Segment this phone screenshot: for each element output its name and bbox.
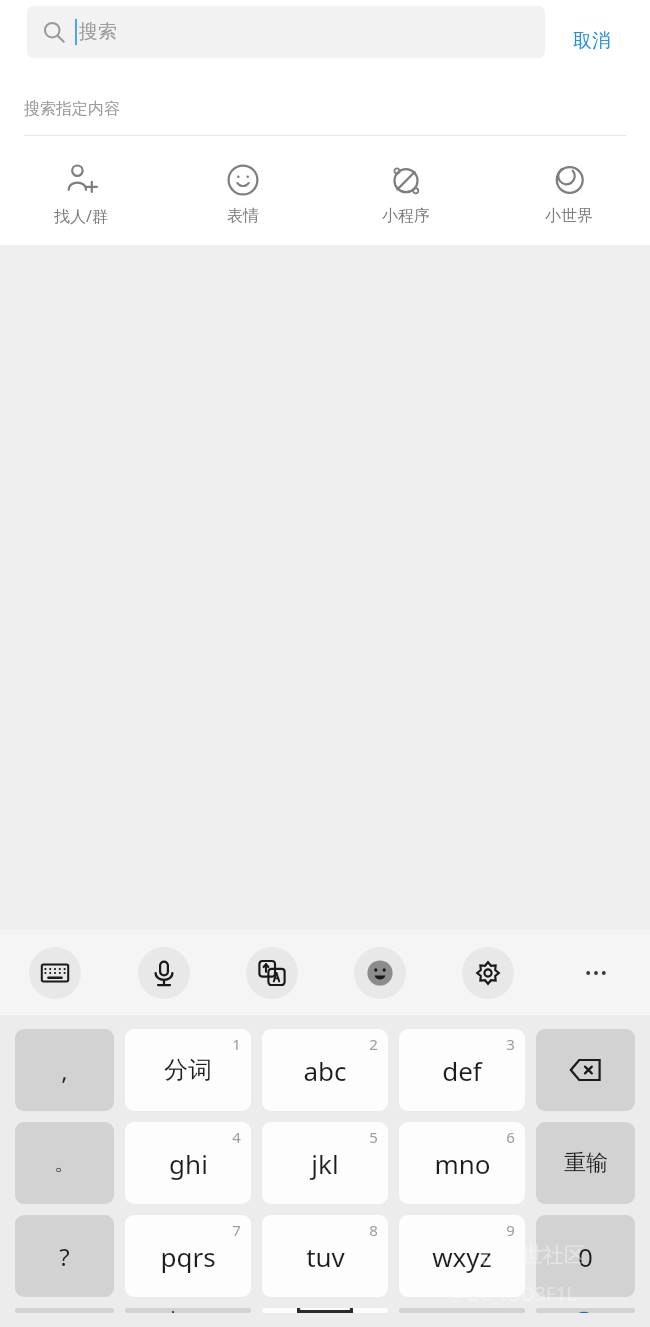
staticText: ?	[59, 1240, 70, 1273]
staticText: @GC_IOD3F1L	[448, 1281, 577, 1307]
button[interactable]: 取消	[556, 11, 628, 71]
button[interactable]: abc	[262, 1029, 388, 1111]
button[interactable]: ?	[15, 1215, 114, 1297]
staticText: 0	[578, 1239, 593, 1274]
button[interactable]: Translate	[218, 930, 326, 1015]
button[interactable]: Search	[536, 1308, 635, 1313]
staticText: ,	[61, 1054, 68, 1087]
button[interactable]: 中	[125, 1308, 251, 1313]
button[interactable]: 小世界	[487, 156, 650, 226]
button[interactable]: ghi	[125, 1122, 251, 1204]
staticText: 小世界	[545, 206, 593, 226]
button[interactable]: 小程序	[324, 156, 487, 226]
button[interactable]: Space	[262, 1308, 388, 1313]
staticText: abc	[303, 1053, 347, 1088]
staticText: 小程序	[382, 206, 430, 226]
staticText: 表情	[227, 206, 259, 226]
staticText: 9	[506, 1220, 515, 1240]
staticText: 1	[232, 1034, 241, 1054]
staticText: 7	[232, 1220, 241, 1240]
staticText: 。	[54, 1149, 76, 1177]
staticText: 重输	[564, 1149, 608, 1177]
staticText: 取消	[573, 29, 611, 53]
button[interactable]: 搜索	[27, 6, 545, 58]
button[interactable]: 找人/群	[0, 155, 162, 227]
staticText: 6	[506, 1127, 515, 1147]
staticText: def	[442, 1053, 482, 1088]
staticText: mno	[434, 1146, 491, 1181]
button[interactable]: mno	[399, 1122, 525, 1204]
staticText: tuv	[306, 1239, 345, 1274]
button[interactable]: Emoji	[326, 930, 434, 1015]
button[interactable]: jkl	[262, 1122, 388, 1204]
button[interactable]: ,	[15, 1029, 114, 1111]
staticText: 搜索	[79, 20, 117, 44]
button[interactable]: 0	[536, 1215, 635, 1297]
button[interactable]: 分词	[125, 1029, 251, 1111]
staticText: 3	[506, 1034, 515, 1054]
staticText: 4	[232, 1127, 241, 1147]
button[interactable]: Backspace	[536, 1029, 635, 1111]
button[interactable]: Voice input	[109, 930, 218, 1015]
button[interactable]: Keyboard layout	[0, 930, 109, 1015]
staticText: 中	[162, 1308, 186, 1313]
staticText: ghi	[169, 1146, 208, 1181]
staticText: 5	[369, 1127, 378, 1147]
staticText: 2	[369, 1034, 378, 1054]
staticText: 找人/群	[54, 205, 108, 227]
button[interactable]: 重输	[536, 1122, 635, 1204]
button[interactable]: 。	[15, 1122, 114, 1204]
staticText: 分词	[164, 1055, 212, 1085]
staticText: 搜索指定内容	[24, 99, 120, 119]
staticText: wxyz	[432, 1239, 492, 1274]
button[interactable]: def	[399, 1029, 525, 1111]
button[interactable]: wxyz	[399, 1215, 525, 1297]
button[interactable]: More options	[542, 930, 650, 1015]
staticText: pqrs	[160, 1239, 216, 1274]
staticText: 8	[369, 1220, 378, 1240]
button[interactable]: 表情	[162, 156, 324, 226]
button[interactable]: pqrs	[125, 1215, 251, 1297]
staticText: 盖乐世社区	[480, 1242, 585, 1268]
staticText: jkl	[311, 1146, 339, 1181]
button[interactable]: tuv	[262, 1215, 388, 1297]
button[interactable]: Settings	[434, 930, 542, 1015]
